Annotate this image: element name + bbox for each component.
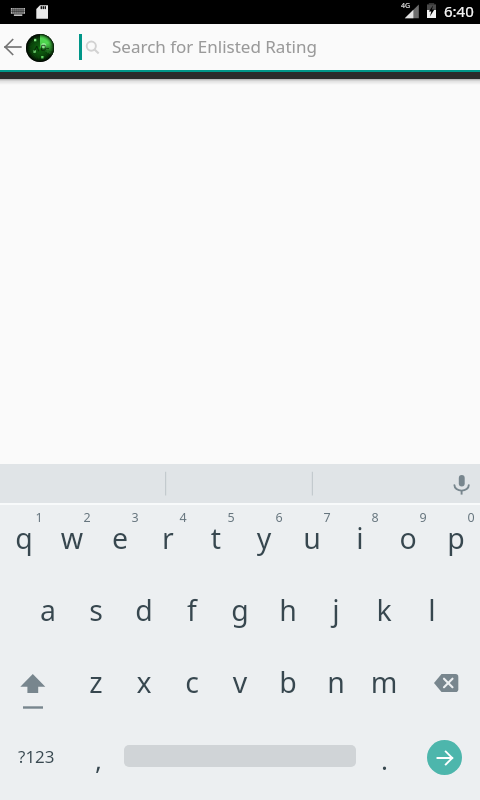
staticText: Search for Enlisted Rating xyxy=(112,35,317,58)
staticText: r xyxy=(144,519,192,558)
staticText: 8 xyxy=(353,509,397,526)
button[interactable]: Shift xyxy=(0,648,72,720)
button[interactable]: t xyxy=(192,504,240,576)
button[interactable]: Enter xyxy=(427,740,462,775)
staticText: l xyxy=(408,591,456,630)
button[interactable]: Back xyxy=(0,24,26,70)
button[interactable]: . xyxy=(360,720,408,792)
button[interactable]: m xyxy=(360,648,408,720)
staticText: o xyxy=(384,519,432,558)
button[interactable]: q xyxy=(0,504,48,576)
staticText: 7 xyxy=(305,509,349,526)
staticText: c xyxy=(168,663,216,702)
staticText: y xyxy=(240,519,288,558)
staticText: 6:40 xyxy=(444,1,474,21)
button[interactable]: r xyxy=(144,504,192,576)
staticText: s xyxy=(72,591,120,630)
button[interactable]: x xyxy=(120,648,168,720)
staticText: j xyxy=(312,591,360,630)
button[interactable]: e xyxy=(96,504,144,576)
staticText: d xyxy=(120,591,168,630)
staticText: ?123 xyxy=(18,745,55,768)
staticText: 0 xyxy=(449,509,480,526)
button[interactable]: Voice input xyxy=(444,464,478,503)
button[interactable]: v xyxy=(216,648,264,720)
staticText: x xyxy=(120,663,168,702)
staticText: b xyxy=(264,663,312,702)
staticText: m xyxy=(360,663,408,702)
staticText: k xyxy=(360,591,408,630)
button[interactable]: s xyxy=(72,576,120,648)
staticText: p xyxy=(432,519,480,558)
button[interactable]: p xyxy=(432,504,480,576)
button[interactable]: Backspace xyxy=(408,648,480,720)
button[interactable]: h xyxy=(264,576,312,648)
staticText: 1 xyxy=(17,509,61,526)
staticText: t xyxy=(192,519,240,558)
button[interactable]: i xyxy=(336,504,384,576)
button[interactable]: z xyxy=(72,648,120,720)
button[interactable]: k xyxy=(360,576,408,648)
staticText: w xyxy=(48,519,96,558)
staticText: 4G xyxy=(401,1,411,11)
button[interactable]: d xyxy=(120,576,168,648)
button[interactable]: y xyxy=(240,504,288,576)
button[interactable]: o xyxy=(384,504,432,576)
staticText: u xyxy=(288,519,336,558)
staticText: h xyxy=(264,591,312,630)
button[interactable]: j xyxy=(312,576,360,648)
button[interactable]: l xyxy=(408,576,456,648)
button[interactable]: u xyxy=(288,504,336,576)
staticText: f xyxy=(168,591,216,630)
staticText: z xyxy=(72,663,120,702)
staticText: a xyxy=(24,591,72,630)
other: Radar app icon xyxy=(26,34,54,62)
staticText: e xyxy=(96,519,144,558)
button[interactable]: g xyxy=(216,576,264,648)
staticText: n xyxy=(312,663,360,702)
staticText: , xyxy=(95,742,102,777)
button[interactable]: c xyxy=(168,648,216,720)
staticText: 2 xyxy=(65,509,109,526)
button[interactable]: n xyxy=(312,648,360,720)
staticText: 5 xyxy=(209,509,253,526)
staticText: v xyxy=(216,663,264,702)
button[interactable]: b xyxy=(264,648,312,720)
staticText: . xyxy=(381,742,388,777)
staticText: 6 xyxy=(257,509,301,526)
button[interactable]: w xyxy=(48,504,96,576)
button[interactable]: f xyxy=(168,576,216,648)
staticText: 3 xyxy=(113,509,157,526)
staticText: q xyxy=(0,519,48,558)
staticText: i xyxy=(336,519,384,558)
staticText: g xyxy=(216,591,264,630)
staticText: 9 xyxy=(401,509,445,526)
button[interactable]: a xyxy=(24,576,72,648)
staticText: 4 xyxy=(161,509,205,526)
button[interactable]: , xyxy=(72,720,122,792)
button[interactable]: ?123 xyxy=(0,720,72,792)
